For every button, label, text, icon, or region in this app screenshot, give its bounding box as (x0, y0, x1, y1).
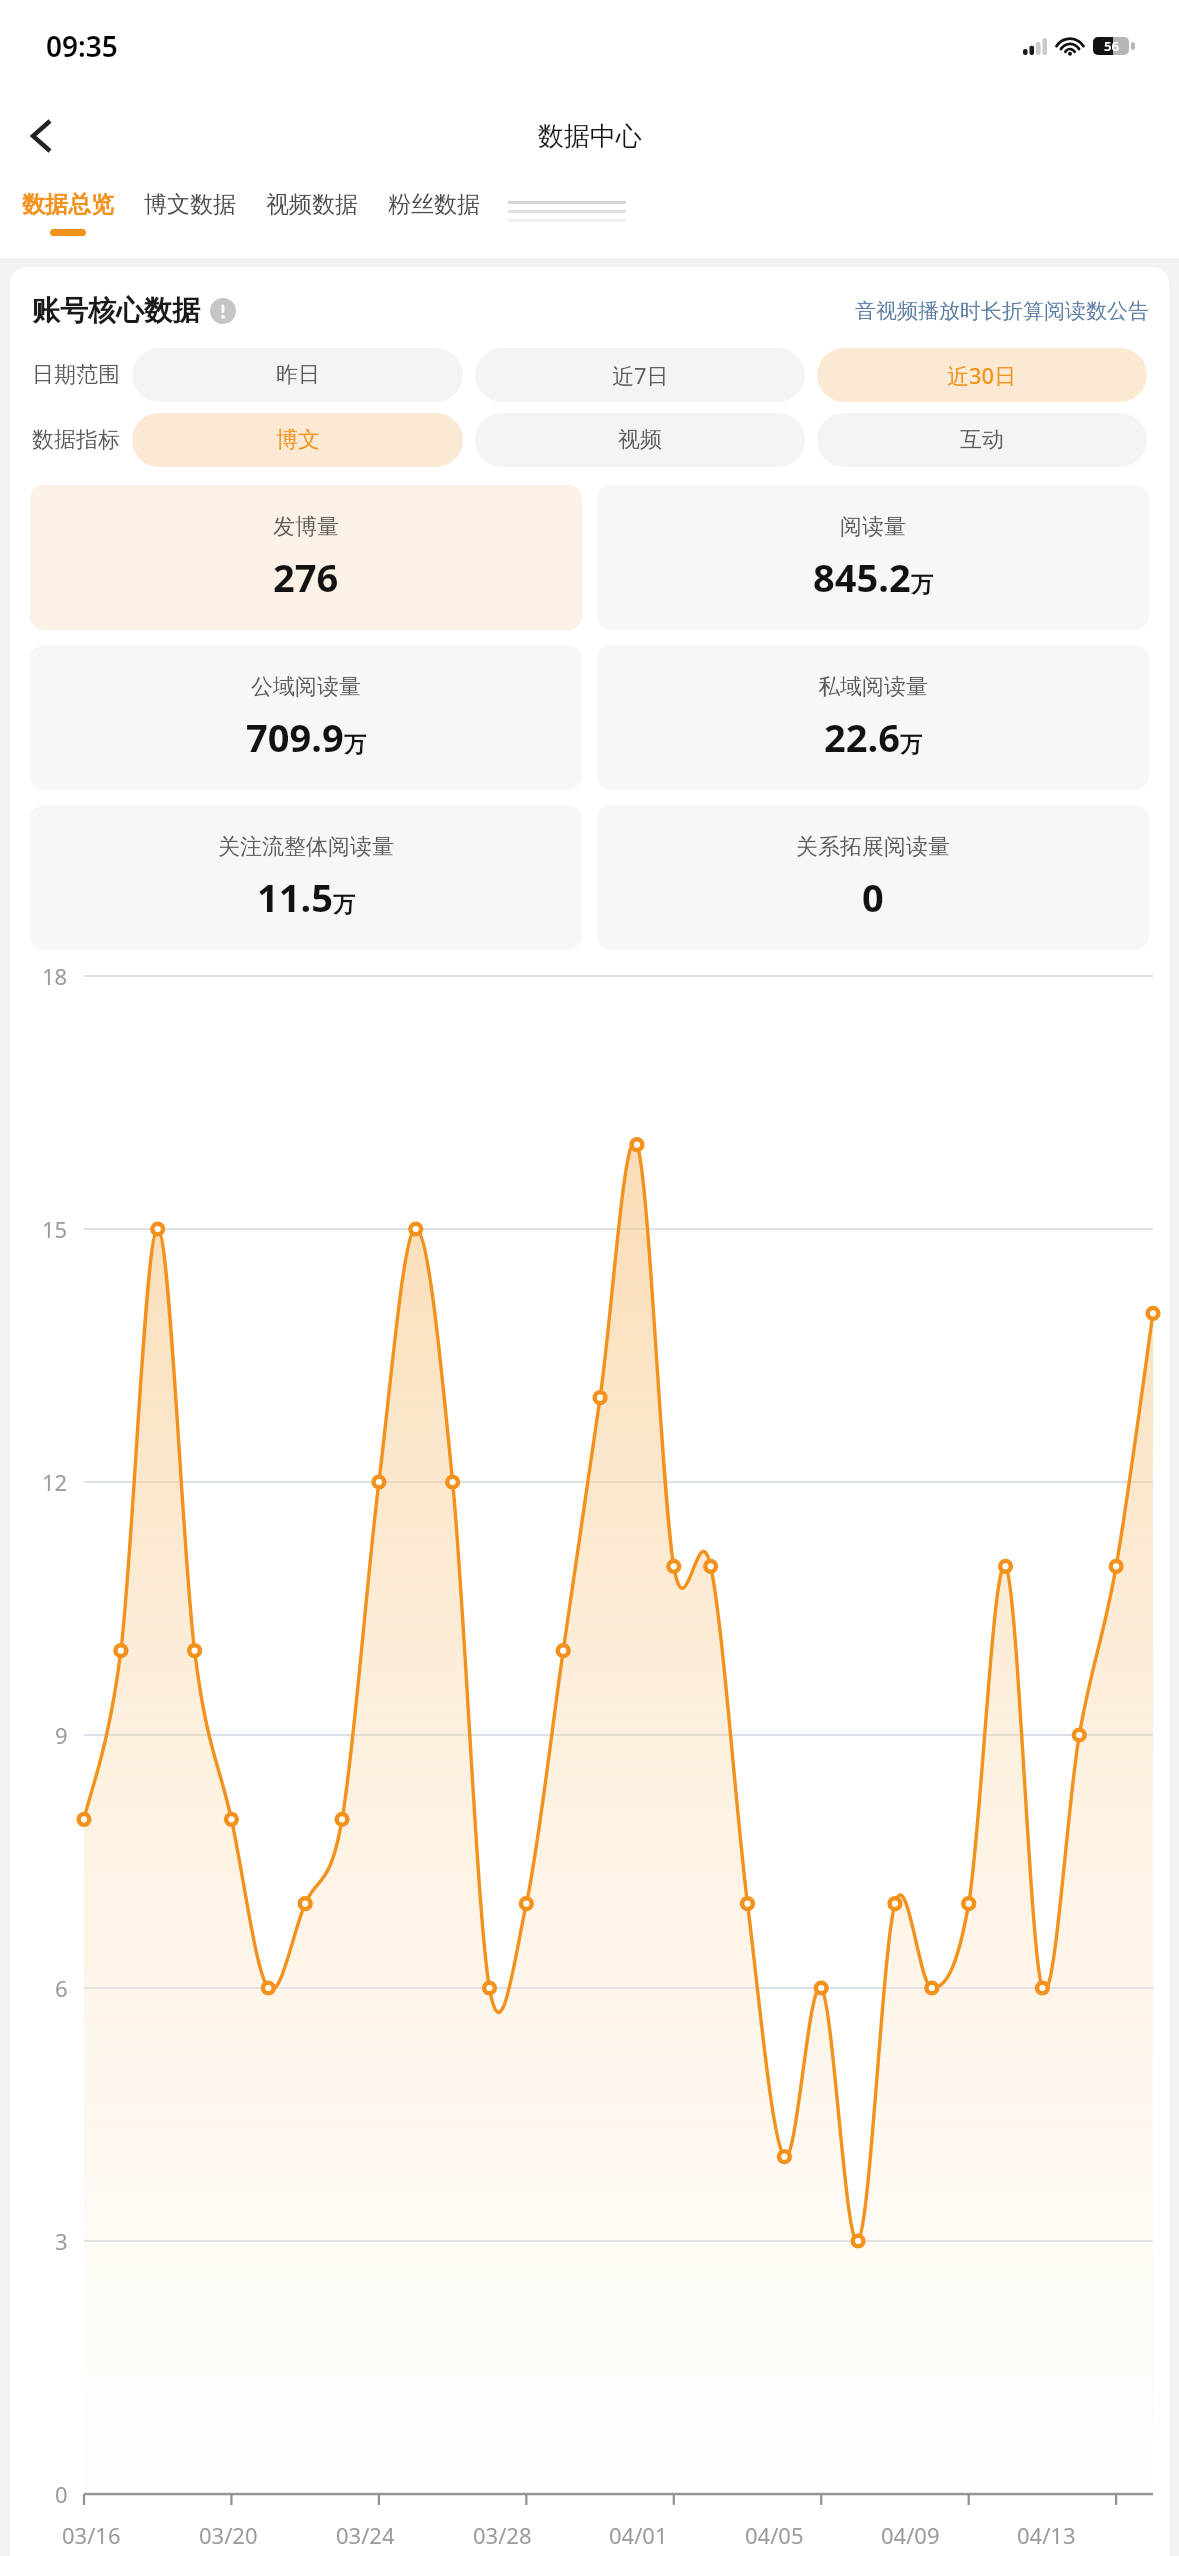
staticText: 04/01 (609, 2520, 668, 2550)
staticText: 关系拓展阅读量 (796, 833, 950, 861)
button[interactable]: 数据总览 (22, 180, 114, 236)
staticText: 视频数据 (266, 190, 358, 219)
staticText: 18 (42, 961, 68, 991)
staticText: 万 (900, 731, 922, 759)
staticText: 万 (333, 891, 355, 919)
staticText: 日期范围 (32, 361, 120, 389)
button[interactable]: 博文数据 (144, 180, 236, 229)
staticText: 03/20 (199, 2520, 258, 2550)
staticText: 03/28 (473, 2520, 532, 2550)
staticText: 9 (55, 1720, 68, 1750)
button[interactable]: 视频 (475, 413, 805, 467)
staticText: 近30日 (947, 360, 1017, 390)
button[interactable]: 近7日 (475, 348, 805, 402)
staticText: 12 (42, 1467, 68, 1497)
staticText: 万 (344, 731, 366, 759)
staticText: 6 (55, 1973, 68, 2003)
staticText: 56 (1104, 37, 1119, 55)
staticText: 709.9 (246, 711, 344, 763)
button[interactable]: 说明 (210, 298, 236, 324)
staticText: 博文数据 (144, 190, 236, 219)
button[interactable]: 视频数据 (266, 180, 358, 229)
staticText: 276 (273, 551, 339, 603)
staticText: 04/05 (745, 2520, 804, 2550)
staticText: 22.6 (824, 711, 900, 763)
staticText: 04/13 (1017, 2520, 1076, 2550)
button[interactable]: 近30日 (817, 348, 1147, 402)
button[interactable]: 发博量 (30, 485, 582, 630)
staticText: 09:35 (46, 27, 118, 65)
staticText: 博文 (276, 426, 320, 454)
staticText: 视频 (618, 426, 662, 454)
staticText: 15 (42, 1214, 68, 1244)
staticText: 0 (862, 871, 884, 923)
staticText: 发博量 (273, 513, 339, 541)
staticText: 04/09 (881, 2520, 940, 2550)
button[interactable]: 音视频播放时长折算阅读数公告 (855, 298, 1149, 324)
staticText: 03/16 (62, 2520, 121, 2550)
staticText: 粉丝数据 (388, 190, 480, 219)
staticText: 03/24 (336, 2520, 395, 2550)
staticText: 账号核心数据 (32, 293, 200, 328)
button[interactable]: 关系拓展阅读量 (597, 805, 1149, 950)
button[interactable]: 关注流整体阅读量 (30, 805, 582, 950)
button[interactable]: 粉丝数据 (388, 180, 480, 229)
button[interactable]: 博文 (132, 413, 463, 467)
staticText: 阅读量 (840, 513, 906, 541)
staticText: 数据指标 (32, 426, 120, 454)
staticText: 845.2 (813, 551, 911, 603)
staticText: 关注流整体阅读量 (218, 833, 394, 861)
staticText: 数据中心 (538, 120, 642, 153)
staticText: 近7日 (612, 360, 669, 390)
staticText: 公域阅读量 (251, 673, 361, 701)
staticText: 昨日 (276, 361, 320, 389)
staticText: 互动 (960, 426, 1004, 454)
staticText: 数据总览 (22, 190, 114, 219)
button[interactable]: 私域阅读量 (597, 645, 1149, 790)
button[interactable]: 阅读量 (597, 485, 1149, 630)
staticText: 0 (55, 2479, 68, 2509)
staticText: 万 (911, 571, 933, 599)
button[interactable]: 公域阅读量 (30, 645, 582, 790)
button[interactable]: Back (10, 105, 72, 167)
staticText: 私域阅读量 (818, 673, 928, 701)
staticText: 11.5 (257, 871, 333, 923)
staticText: 3 (55, 2226, 68, 2256)
button[interactable]: 昨日 (132, 348, 463, 402)
button[interactable]: 互动 (817, 413, 1147, 467)
